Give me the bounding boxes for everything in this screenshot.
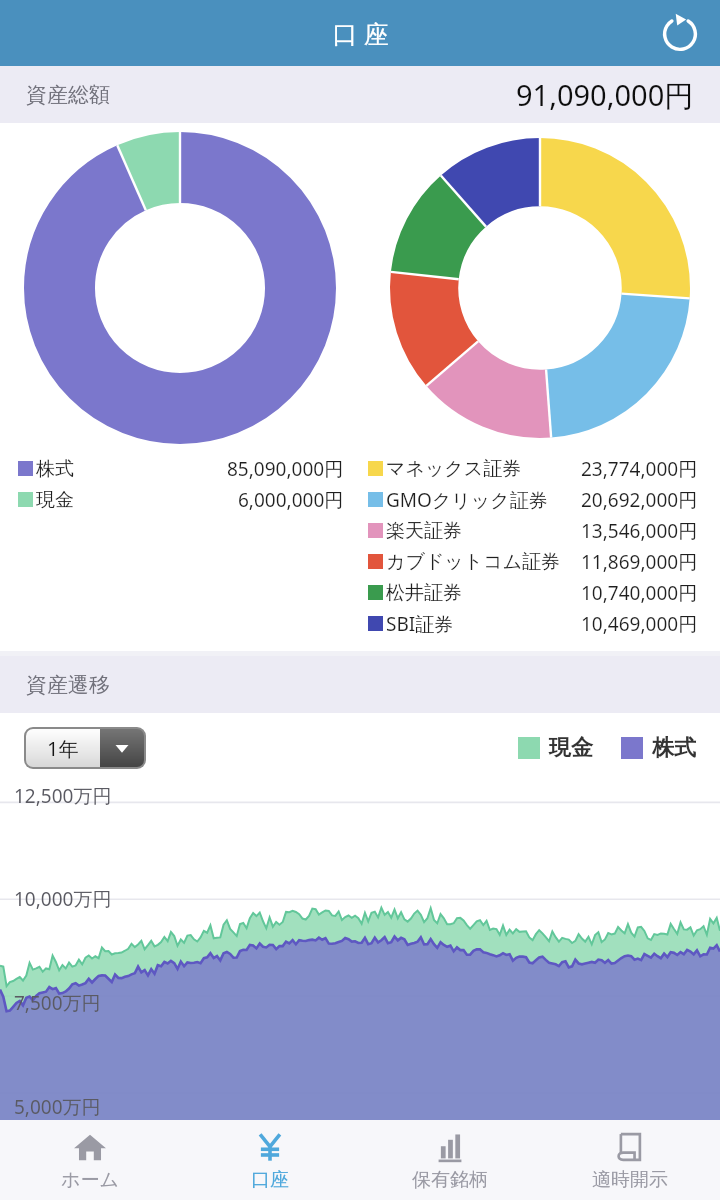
- staticText: 11,869,000円: [581, 549, 698, 575]
- staticText: SBI証券: [386, 611, 454, 637]
- staticText: マネックス証券: [386, 457, 522, 481]
- button[interactable]: 松井証券: [368, 577, 698, 608]
- button[interactable]: 1年: [26, 729, 144, 767]
- staticText: 10,740,000円: [581, 580, 698, 606]
- staticText: 85,090,000円: [227, 456, 344, 482]
- staticText: 1年: [47, 735, 79, 762]
- staticText: 7,500万円: [14, 990, 101, 1016]
- staticText: 13,546,000円: [581, 518, 698, 544]
- staticText: GMOクリック証券: [386, 487, 548, 513]
- staticText: 10,469,000円: [581, 611, 698, 637]
- staticText: 6,000,000円: [238, 487, 344, 513]
- button[interactable]: SBI証券: [368, 608, 698, 639]
- button[interactable]: 株式: [621, 734, 696, 762]
- button[interactable]: 現金: [18, 484, 344, 515]
- staticText: 5,000万円: [14, 1094, 101, 1120]
- button[interactable]: ホーム: [0, 1120, 180, 1200]
- button[interactable]: 株式: [18, 453, 344, 484]
- button[interactable]: カブドットコム証券: [368, 546, 698, 577]
- button[interactable]: 現金: [518, 734, 593, 762]
- button[interactable]: 楽天証券: [368, 515, 698, 546]
- button[interactable]: マネックス証券: [368, 453, 698, 484]
- staticText: 資産総額: [26, 82, 110, 108]
- staticText: 12,500万円: [14, 783, 112, 809]
- staticText: 株式: [36, 457, 74, 481]
- button[interactable]: 適時開示: [540, 1120, 720, 1200]
- staticText: 資産遷移: [26, 672, 110, 698]
- staticText: 91,090,000円: [516, 75, 694, 115]
- staticText: 現金: [549, 734, 593, 762]
- staticText: 20,692,000円: [581, 487, 698, 513]
- staticText: カブドットコム証券: [386, 550, 561, 574]
- staticText: 23,774,000円: [581, 456, 698, 482]
- staticText: 保有銘柄: [412, 1168, 488, 1192]
- staticText: ホーム: [61, 1168, 119, 1192]
- button[interactable]: 口座: [180, 1120, 360, 1200]
- staticText: 楽天証券: [386, 519, 462, 543]
- staticText: 10,000万円: [14, 886, 112, 912]
- staticText: 適時開示: [592, 1168, 668, 1192]
- staticText: 口座: [251, 1168, 289, 1192]
- button[interactable]: Refresh: [656, 9, 704, 57]
- button[interactable]: 保有銘柄: [360, 1120, 540, 1200]
- staticText: 株式: [652, 734, 696, 762]
- staticText: 口 座: [332, 16, 389, 50]
- staticText: 現金: [36, 488, 74, 512]
- staticText: 松井証券: [386, 581, 462, 605]
- button[interactable]: GMOクリック証券: [368, 484, 698, 515]
